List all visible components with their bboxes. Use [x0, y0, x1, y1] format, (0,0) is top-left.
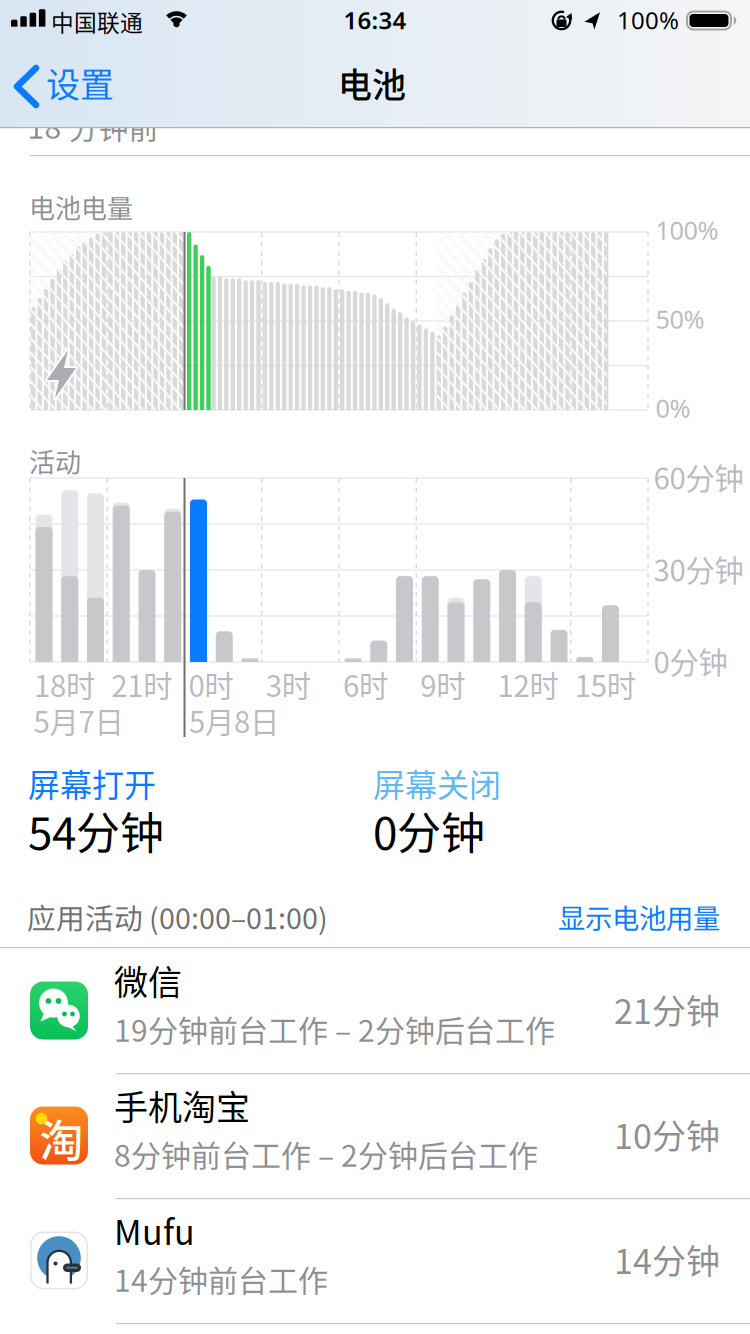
staticText: 5月7日: [33, 699, 123, 741]
staticText: 屏幕打开: [28, 760, 156, 806]
staticText: 中国联通: [51, 5, 143, 38]
staticText: 微信: [114, 955, 182, 1005]
button[interactable]: 淘: [0, 1073, 750, 1198]
staticText: 100%: [617, 4, 679, 36]
staticText: 活动: [29, 442, 81, 480]
staticText: 15时: [575, 663, 636, 705]
staticText: 屏幕关闭: [373, 760, 501, 806]
staticText: 淘: [39, 1106, 83, 1170]
staticText: 10分钟: [614, 1109, 720, 1159]
staticText: 50%: [655, 302, 704, 336]
staticText: 21分钟: [614, 984, 720, 1034]
staticText: 30分钟: [653, 547, 743, 590]
staticText: 0%: [655, 391, 690, 425]
staticText: 显示电池用量: [558, 897, 720, 937]
staticText: 14分钟: [614, 1234, 720, 1284]
staticText: 12时: [497, 663, 558, 705]
staticText: 电池: [338, 58, 406, 107]
staticText: 0时: [188, 663, 233, 705]
staticText: 18 分钟前: [27, 104, 158, 147]
staticText: 0分钟: [653, 639, 727, 682]
staticText: 5月8日: [189, 699, 279, 741]
staticText: 9时: [420, 663, 465, 705]
button[interactable]: 微信: [0, 948, 750, 1073]
staticText: 100%: [655, 213, 718, 247]
staticText: 0分钟: [373, 798, 485, 862]
staticText: 设置: [46, 58, 114, 107]
staticText: 6时: [343, 663, 388, 705]
staticText: 21时: [111, 663, 172, 705]
staticText: 手机淘宝: [114, 1080, 250, 1130]
staticText: 16:34: [343, 4, 406, 36]
staticText: 18时: [34, 663, 95, 705]
staticText: 8分钟前台工作 – 2分钟后台工作: [114, 1132, 538, 1175]
staticText: 19分钟前台工作 – 2分钟后台工作: [114, 1007, 555, 1050]
button[interactable]: Mufu: [0, 1198, 750, 1323]
staticText: 应用活动 (00:00–01:00): [27, 896, 328, 937]
staticText: 54分钟: [28, 798, 164, 862]
staticText: 3时: [266, 663, 311, 705]
button[interactable]: 设置: [17, 66, 109, 115]
staticText: Mufu: [114, 1205, 195, 1255]
button[interactable]: 显示电池用量: [0, 897, 720, 937]
staticText: 电池电量: [29, 188, 133, 226]
staticText: 60分钟: [653, 455, 743, 498]
staticText: 14分钟前台工作: [114, 1257, 328, 1300]
